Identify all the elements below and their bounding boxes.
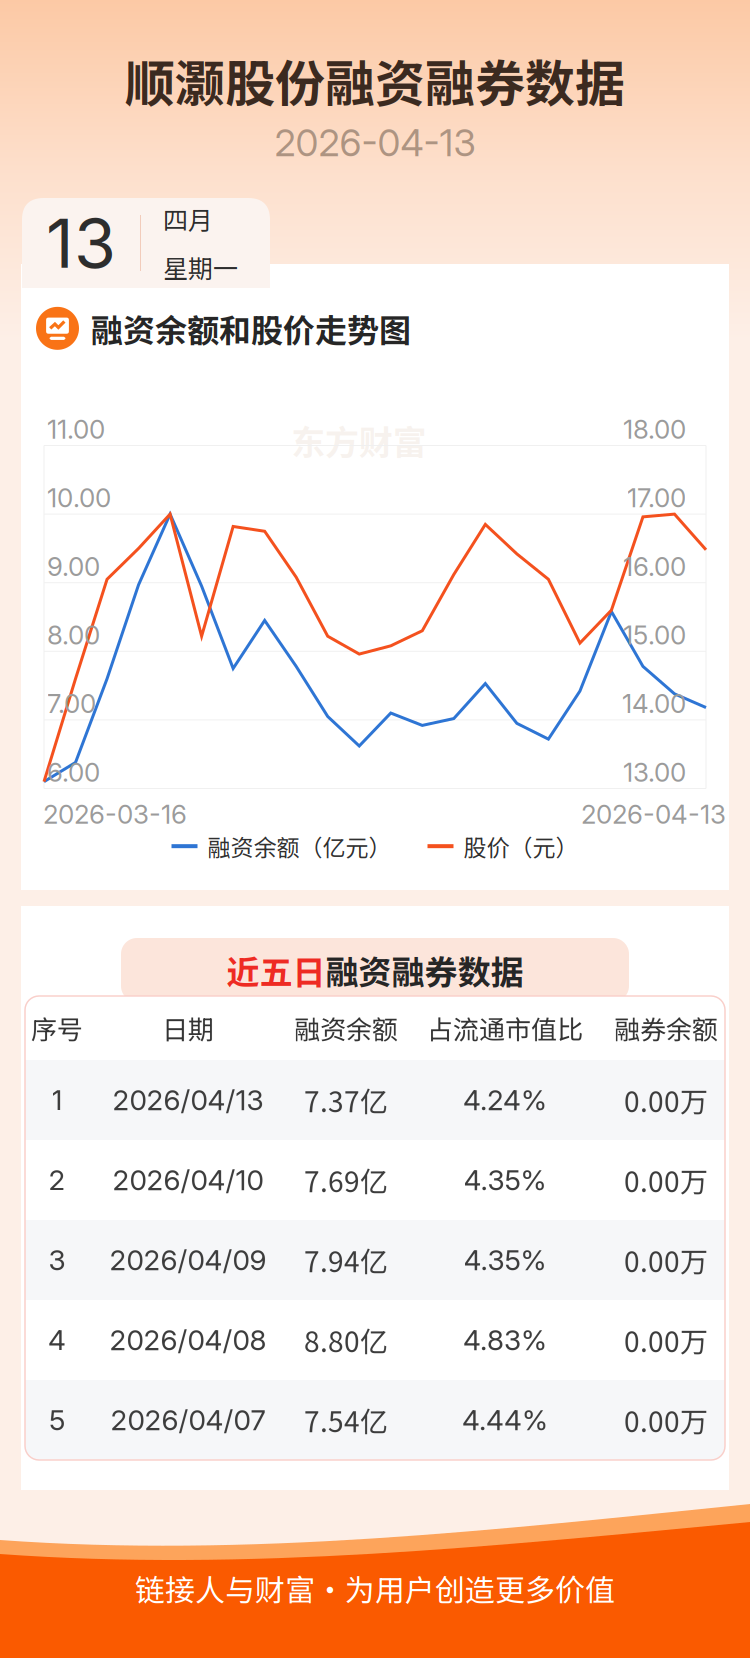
staticText: 星期一 bbox=[163, 249, 238, 285]
staticText: 日期 bbox=[162, 1009, 214, 1047]
staticText: 2026-04-13 bbox=[274, 120, 475, 165]
staticText: 5 bbox=[49, 1403, 65, 1437]
staticText: 8.00 bbox=[47, 619, 100, 651]
staticText: 链接人与财富·为用户创造更多价值 bbox=[135, 1567, 615, 1610]
staticText: 18.00 bbox=[623, 413, 686, 445]
staticText: 13 bbox=[46, 202, 116, 284]
staticText: 11.00 bbox=[47, 413, 105, 445]
staticText: 融券余额 bbox=[614, 1009, 718, 1047]
staticText: 16.00 bbox=[623, 551, 686, 582]
staticText: 0.00万 bbox=[624, 1080, 708, 1120]
staticText: 7.00 bbox=[47, 688, 96, 719]
staticText: 融资余额和股价走势图 bbox=[91, 305, 411, 351]
staticText: 顺灏股份融资融券数据 bbox=[125, 44, 625, 116]
staticText: 占流通市值比 bbox=[427, 1009, 583, 1047]
staticText: 4.83% bbox=[463, 1323, 547, 1357]
staticText: 9.00 bbox=[47, 551, 100, 582]
staticText: 近五日 bbox=[226, 946, 325, 994]
staticText: 7.94亿 bbox=[304, 1240, 388, 1280]
staticText: 0.00万 bbox=[624, 1320, 708, 1360]
staticText: 序号 bbox=[31, 1009, 83, 1047]
staticText: 4.44% bbox=[462, 1403, 548, 1437]
staticText: 8.80亿 bbox=[304, 1320, 388, 1360]
staticText: 0.00万 bbox=[624, 1160, 708, 1200]
staticText: 2 bbox=[48, 1163, 65, 1197]
staticText: 17.00 bbox=[627, 482, 686, 514]
staticText: 股价（元） bbox=[463, 829, 578, 863]
staticText: 6.00 bbox=[47, 756, 100, 788]
staticText: 4.35% bbox=[463, 1243, 546, 1277]
staticText: 2026-04-13 bbox=[581, 798, 726, 830]
staticText: 四月 bbox=[163, 201, 213, 237]
staticText: 东方财富 bbox=[291, 415, 427, 465]
staticText: 2026-03-16 bbox=[43, 798, 187, 830]
staticText: 15.00 bbox=[623, 619, 686, 651]
staticText: 融资余额（亿元） bbox=[207, 829, 391, 863]
staticText: 7.54亿 bbox=[304, 1400, 388, 1440]
staticText: 4.24% bbox=[463, 1083, 547, 1117]
staticText: 14.00 bbox=[622, 688, 686, 719]
staticText: 2026/04/10 bbox=[112, 1163, 263, 1197]
staticText: 7.69亿 bbox=[304, 1160, 388, 1200]
staticText: 2026/04/07 bbox=[110, 1403, 265, 1437]
staticText: 2026/04/08 bbox=[109, 1323, 266, 1357]
staticText: 3 bbox=[48, 1243, 65, 1277]
staticText: 1 bbox=[51, 1083, 62, 1117]
staticText: 融资余额 bbox=[294, 1009, 398, 1047]
staticText: 2026/04/13 bbox=[112, 1083, 263, 1117]
staticText: 7.37亿 bbox=[304, 1080, 388, 1120]
staticText: 2026/04/09 bbox=[109, 1243, 266, 1277]
staticText: 0.00万 bbox=[624, 1400, 708, 1440]
staticText: 4.35% bbox=[463, 1163, 546, 1197]
staticText: 4 bbox=[48, 1323, 66, 1357]
staticText: 0.00万 bbox=[624, 1240, 708, 1280]
staticText: 融资融券数据 bbox=[325, 946, 523, 994]
staticText: 10.00 bbox=[47, 482, 111, 514]
staticText: 13.00 bbox=[623, 756, 686, 788]
